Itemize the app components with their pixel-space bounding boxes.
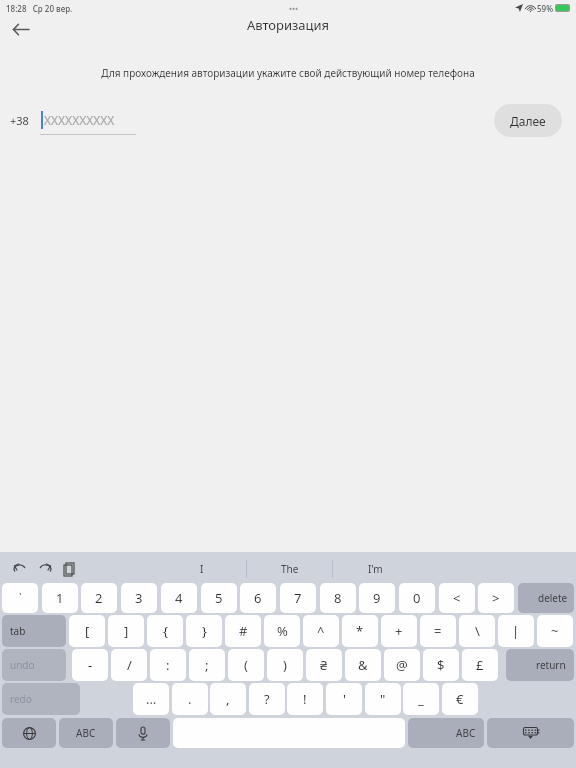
staticText: ' [343,690,346,708]
staticText: | [512,622,520,640]
button[interactable]: ' [326,683,362,715]
button[interactable]: % [264,615,300,647]
staticText: ABC [456,726,476,740]
button[interactable]: : [150,649,186,681]
staticText: 1 [56,589,64,607]
button[interactable]: I'm [333,558,418,580]
button[interactable]: @ [384,649,420,681]
button[interactable]: 8 [320,583,356,613]
button[interactable]: } [186,615,222,647]
button[interactable]: . [172,683,208,715]
button[interactable]: I [158,558,246,580]
button[interactable]: ! [287,683,323,715]
staticText: \ [475,622,480,640]
staticText: return [536,658,566,672]
button[interactable]: Диктовка [116,718,170,748]
button[interactable]: ~ [537,615,573,647]
button[interactable]: ) [267,649,303,681]
button[interactable]: _ [403,683,439,715]
button[interactable]: + [381,615,417,647]
button[interactable]: ABC [408,718,484,748]
button[interactable]: Повторить [37,561,53,577]
staticText: ? [264,690,270,708]
staticText: delete [538,591,568,605]
button[interactable]: \ [459,615,495,647]
staticText: [ [85,622,90,640]
staticText: tab [10,624,26,638]
staticText: The [281,562,299,576]
button[interactable]: / [111,649,147,681]
staticText: - [88,656,93,674]
button[interactable]: # [225,615,261,647]
staticText: * [356,622,364,640]
button[interactable]: ; [189,649,225,681]
staticText: I [200,562,204,576]
button[interactable]: ] [108,615,144,647]
button[interactable]: ( [228,649,264,681]
button[interactable]: 5 [201,583,237,613]
staticText: / [127,656,132,674]
button[interactable]: Отменить [12,561,28,577]
button[interactable]: = [420,615,456,647]
button[interactable]: 9 [359,583,395,613]
staticText: ) [283,656,287,674]
button[interactable]: - [72,649,108,681]
button[interactable]: ₴ [306,649,342,681]
button[interactable]: The [247,558,332,580]
button[interactable]: * [342,615,378,647]
button[interactable]: > [478,583,514,613]
button[interactable]: { [147,615,183,647]
button[interactable]: [ [69,615,105,647]
button[interactable]: & [345,649,381,681]
staticText: I'm [368,562,383,576]
button[interactable]: 4 [161,583,197,613]
button[interactable]: return [506,649,574,681]
staticText: ^ [317,622,325,640]
button[interactable]: undo [2,649,66,681]
staticText: 18:28 Ср 20 вер. [6,3,73,14]
staticText: ₴ [320,656,328,674]
button[interactable]: < [439,583,475,613]
button[interactable]: 1 [42,583,78,613]
button[interactable]: Далее [494,104,562,137]
staticText: 9 [373,589,381,607]
button[interactable]: ? [249,683,285,715]
button[interactable]: Скрыть клавиатуру [487,718,574,748]
staticText: ; [205,656,209,674]
button[interactable]: $ [423,649,459,681]
button[interactable]: € [442,683,478,715]
button[interactable]: 0 [399,583,435,613]
button[interactable]: ` [2,583,38,613]
button[interactable]: Вставить [62,561,78,577]
button[interactable]: 6 [240,583,276,613]
button[interactable]: 2 [81,583,117,613]
staticText: £ [476,656,484,674]
button[interactable]: 3 [121,583,157,613]
button[interactable]: " [365,683,401,715]
staticText: Далее [510,113,546,129]
button[interactable]: Язык [2,718,56,748]
button[interactable]: , [210,683,246,715]
button[interactable]: 7 [280,583,316,613]
staticText: € [456,690,464,708]
staticText: 2 [95,589,103,607]
button[interactable]: ^ [303,615,339,647]
button[interactable]: … [133,683,169,715]
button[interactable]: | [498,615,534,647]
staticText: 6 [254,589,262,607]
staticText: 59% [537,3,553,14]
button[interactable]: £ [462,649,498,681]
staticText: Для прохождения авторизации укажите свой… [0,66,576,80]
staticText: +38 [10,113,29,128]
staticText: @ [396,656,408,674]
staticText: = [434,622,442,640]
staticText: 4 [175,589,183,607]
button[interactable]: tab [2,615,66,647]
button[interactable]: ABC [59,718,113,748]
button[interactable]: delete [518,583,574,613]
button[interactable]: redo [2,683,80,715]
staticText: } [202,622,207,640]
button[interactable]: Назад [6,16,34,42]
staticText: : [166,656,170,674]
